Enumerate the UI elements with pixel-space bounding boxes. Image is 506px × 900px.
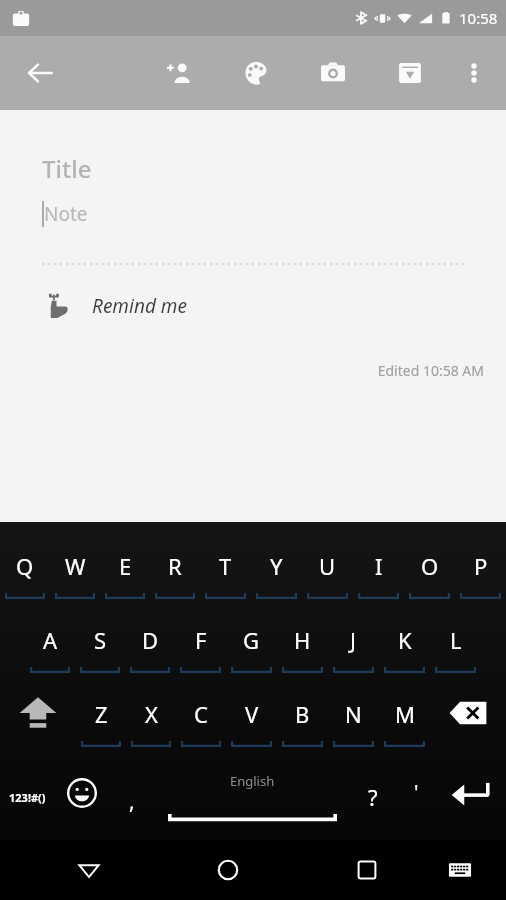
- staticText: English: [230, 772, 275, 790]
- button[interactable]: Home: [202, 844, 254, 896]
- staticText: ?: [368, 782, 378, 812]
- button[interactable]: M: [379, 686, 430, 760]
- button[interactable]: Enter: [436, 760, 506, 834]
- button[interactable]: Shift: [0, 686, 76, 760]
- button[interactable]: K: [379, 612, 430, 686]
- staticText: ': [414, 778, 419, 805]
- button[interactable]: More options: [452, 51, 496, 95]
- button[interactable]: J: [328, 612, 379, 686]
- button[interactable]: Z: [76, 686, 126, 760]
- button[interactable]: Recent apps: [341, 844, 393, 896]
- staticText: U: [319, 551, 336, 581]
- button[interactable]: Y: [251, 538, 302, 612]
- staticText: 123!#(): [9, 790, 46, 805]
- staticText: E: [119, 551, 132, 581]
- button[interactable]: Space: [154, 760, 350, 834]
- staticText: T: [219, 551, 232, 581]
- staticText: A: [43, 625, 58, 655]
- staticText: N: [345, 699, 362, 729]
- button[interactable]: Take photo: [311, 51, 355, 95]
- button[interactable]: T: [200, 538, 251, 612]
- button[interactable]: R: [150, 538, 200, 612]
- button[interactable]: V: [226, 686, 277, 760]
- button[interactable]: U: [302, 538, 353, 612]
- staticText: Q: [16, 551, 34, 581]
- staticText: G: [243, 625, 260, 655]
- button[interactable]: W: [50, 538, 100, 612]
- button[interactable]: D: [125, 612, 175, 686]
- staticText: P: [474, 551, 488, 581]
- button[interactable]: ?: [350, 760, 396, 834]
- staticText: S: [94, 625, 107, 655]
- button[interactable]: Add collaborator: [157, 51, 201, 95]
- button[interactable]: H: [277, 612, 328, 686]
- staticText: Title: [42, 152, 92, 185]
- button[interactable]: Emoji: [54, 760, 110, 834]
- staticText: Y: [270, 551, 283, 581]
- button[interactable]: F: [175, 612, 226, 686]
- button[interactable]: Back: [63, 844, 115, 896]
- button[interactable]: Backspace: [430, 686, 506, 760]
- button[interactable]: S: [75, 612, 125, 686]
- button[interactable]: Switch keyboard: [434, 844, 486, 896]
- button[interactable]: Remind me: [44, 293, 187, 319]
- staticText: W: [65, 551, 86, 581]
- staticText: K: [398, 625, 412, 655]
- button[interactable]: O: [404, 538, 455, 612]
- staticText: O: [421, 551, 439, 581]
- staticText: Note: [44, 201, 88, 227]
- staticText: Edited 10:58 AM: [0, 361, 484, 380]
- staticText: ,: [129, 787, 135, 816]
- staticText: H: [294, 625, 311, 655]
- button[interactable]: I: [353, 538, 404, 612]
- button[interactable]: L: [430, 612, 481, 686]
- staticText: L: [450, 625, 462, 655]
- button[interactable]: 123!#(): [0, 760, 54, 834]
- staticText: D: [142, 625, 159, 655]
- staticText: M: [395, 699, 415, 729]
- staticText: Remind me: [92, 293, 187, 319]
- staticText: X: [145, 699, 158, 729]
- button[interactable]: P: [455, 538, 506, 612]
- button[interactable]: ,: [110, 760, 154, 834]
- button[interactable]: E: [100, 538, 150, 612]
- staticText: C: [194, 699, 208, 729]
- button[interactable]: Q: [0, 538, 50, 612]
- staticText: F: [195, 625, 207, 655]
- button[interactable]: N: [328, 686, 379, 760]
- button[interactable]: Archive: [388, 51, 432, 95]
- button[interactable]: C: [176, 686, 226, 760]
- staticText: R: [168, 551, 182, 581]
- staticText: I: [375, 551, 383, 581]
- staticText: B: [295, 699, 310, 729]
- button[interactable]: Back: [18, 51, 62, 95]
- button[interactable]: G: [226, 612, 277, 686]
- staticText: Z: [95, 699, 108, 729]
- staticText: J: [350, 625, 357, 655]
- staticText: 10:58: [459, 8, 498, 28]
- button[interactable]: Change color: [234, 51, 278, 95]
- button[interactable]: A: [25, 612, 75, 686]
- button[interactable]: X: [126, 686, 176, 760]
- button[interactable]: ': [396, 760, 436, 834]
- staticText: V: [245, 699, 259, 729]
- button[interactable]: B: [277, 686, 328, 760]
